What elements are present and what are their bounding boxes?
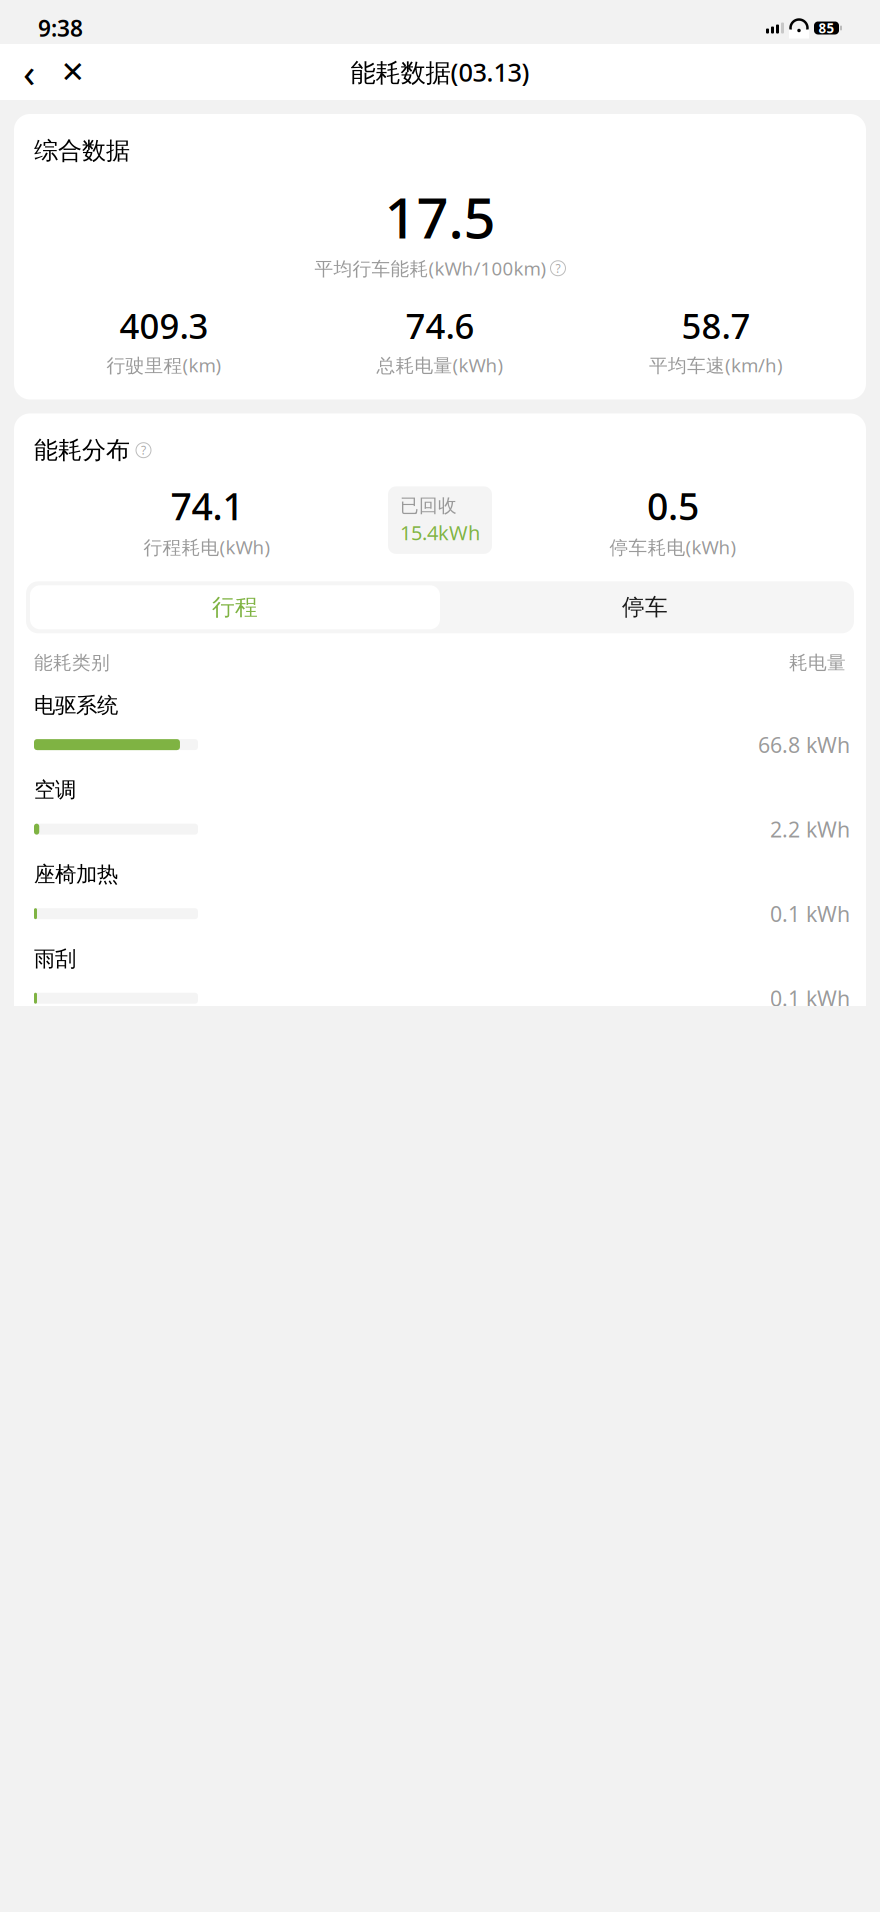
staticText: 74.1 [170,481,243,530]
staticText: 停车耗电(kWh) [609,534,736,559]
button[interactable]: 行程 [30,585,440,629]
staticText: 停车 [622,593,668,621]
staticText: ? [555,260,560,276]
staticText: 耗电量 [789,651,846,674]
staticText: 行程耗电(kWh) [143,534,270,559]
staticText: 409.3 [119,303,208,349]
button[interactable]: 停车 [440,585,850,629]
staticText: 15.4kWh [400,519,480,546]
staticText: 85 [818,19,834,37]
staticText: ‹ [23,45,35,98]
staticText: 已回收 [400,494,457,517]
staticText: 0.5 [647,481,699,530]
staticText: 9:38 [38,13,83,43]
staticText: 座椅加热 [34,861,118,887]
staticText: 2.2 kWh [770,815,850,843]
staticText: 行驶里程(km) [106,353,221,377]
staticText: ? [141,442,146,458]
button[interactable]: Close [56,50,90,94]
staticText: 能耗类别 [34,651,110,674]
staticText: ✕ [60,55,85,89]
staticText: 平均车速(km/h) [649,353,783,377]
staticText: 行程 [212,593,258,621]
staticText: 空调 [34,777,76,803]
button[interactable]: Back [12,50,46,94]
staticText: 能耗数据(03.13) [350,55,529,89]
staticText: 平均行车能耗(kWh/100km) [314,256,546,281]
staticText: 66.8 kWh [758,730,850,759]
staticText: 17.5 [384,179,495,254]
staticText: 能耗分布 [34,435,130,465]
staticText: 74.6 [405,303,474,349]
staticText: 电驱系统 [34,692,118,718]
staticText: 0.1 kWh [770,899,850,928]
staticText: 综合数据 [34,136,130,165]
staticText: 雨刮 [34,946,76,972]
staticText: 0.1 kWh [770,984,850,1012]
staticText: 总耗电量(kWh) [376,353,503,377]
staticText: 58.7 [681,303,750,349]
